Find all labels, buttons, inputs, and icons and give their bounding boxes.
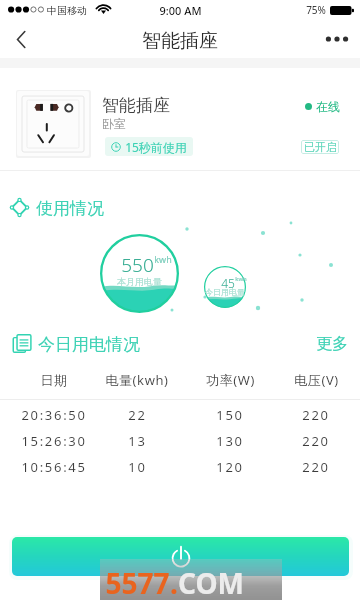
staticText: 10:56:45 [21,458,87,476]
staticText: 卧室 [102,116,126,131]
staticText: 13 [128,432,147,450]
staticText: 220 [302,432,330,450]
staticText: 使用情况 [36,198,104,219]
staticText: 智能插座 [102,95,170,116]
button[interactable]: More options [314,20,360,58]
staticText: 220 [302,458,330,476]
staticText: . [170,564,178,600]
staticText: kwh [154,253,172,265]
staticText: 130 [216,432,244,450]
staticText: 10 [128,458,147,476]
staticText: 中国移动 [47,4,87,17]
staticText: kwh [235,275,247,283]
staticText: 今日用电量 [205,287,245,297]
button[interactable]: Back [0,20,42,58]
staticText: 550 [121,252,154,278]
staticText: 15秒前使用 [125,139,187,155]
button[interactable]: 已开启 [301,140,339,154]
button[interactable]: 智能插座 [0,68,360,170]
staticText: COM [178,564,244,600]
staticText: 在线 [316,99,340,114]
staticText: 5577 [105,564,170,600]
staticText: 20:36:50 [21,406,87,424]
staticText: 智能插座 [142,29,218,53]
staticText: 75% [306,3,326,17]
staticText: 更多 [316,334,348,354]
staticText: 220 [302,406,330,424]
staticText: 已开启 [304,140,337,154]
staticText: 45 [221,275,235,291]
staticText: 9:00 AM [159,3,202,18]
staticText: 日期 [40,372,68,388]
staticText: 120 [216,458,244,476]
staticText: 本月用电量 [117,276,162,287]
button[interactable]: Power toggle [12,537,349,576]
staticText: 今日用电情况 [38,334,140,355]
staticText: 15:26:30 [21,432,87,450]
staticText: 22 [128,406,147,424]
button[interactable]: 更多 [316,334,348,354]
staticText: 电量(kwh) [105,371,169,389]
staticText: 功率(W) [206,371,255,389]
staticText: 150 [216,406,244,424]
staticText: 电压(V) [294,371,339,389]
